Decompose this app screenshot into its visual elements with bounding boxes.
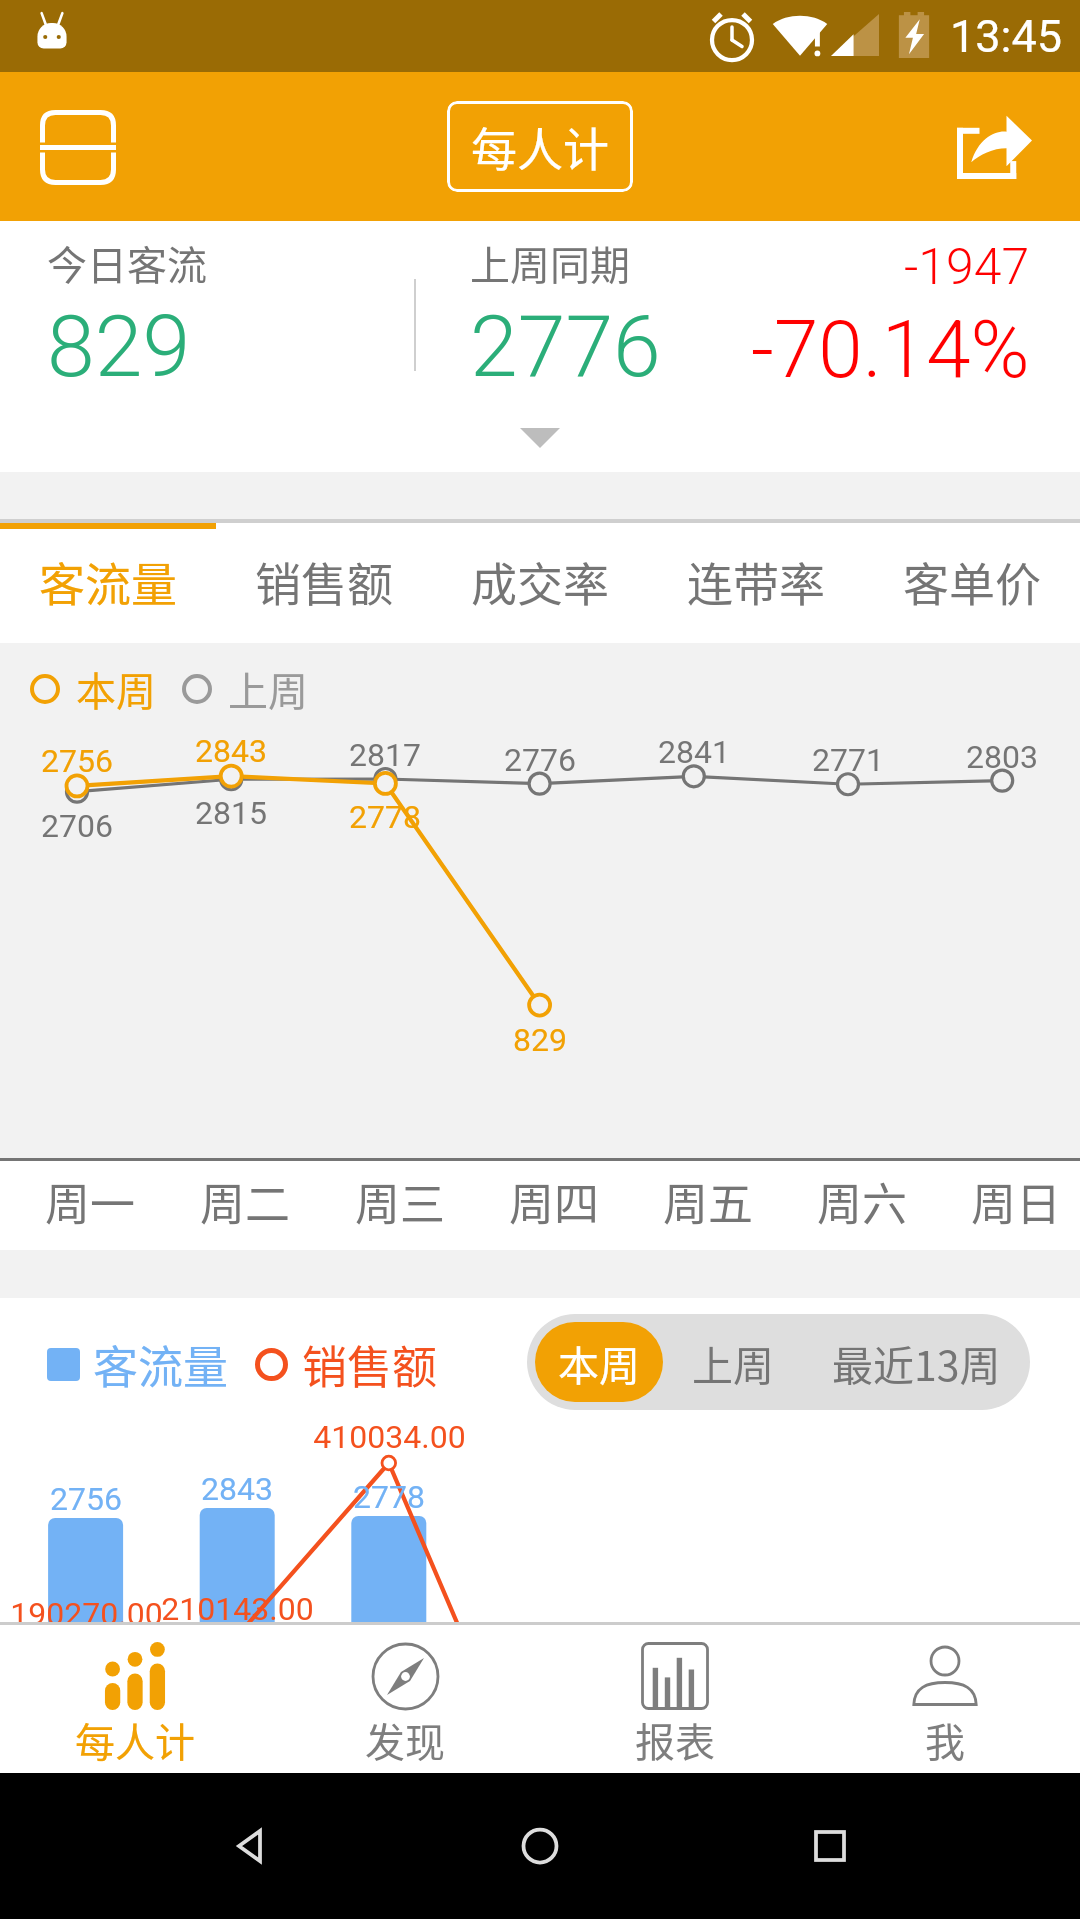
staticText: 2706 <box>41 807 113 845</box>
staticText: 2778 <box>353 1478 425 1516</box>
staticText: 发现 <box>365 1711 445 1769</box>
staticText: 829 <box>513 1021 567 1059</box>
button[interactable]: Home <box>500 1806 580 1886</box>
staticText: 每人计 <box>75 1711 195 1769</box>
staticText: 2817 <box>349 736 421 774</box>
staticText: 上周 <box>692 1333 774 1392</box>
staticText: 最近13周 <box>832 1333 1001 1392</box>
staticText: 客流量 <box>93 1332 229 1397</box>
button[interactable]: 销售额 <box>216 529 432 643</box>
staticText: 周三 <box>355 1169 446 1234</box>
staticText: 报表 <box>635 1711 715 1769</box>
button[interactable]: 每人计 <box>447 101 633 192</box>
staticText: 2756 <box>50 1480 122 1518</box>
staticText: 每人计 <box>471 113 609 180</box>
staticText: 周六 <box>817 1169 908 1234</box>
button[interactable]: Recent apps <box>790 1806 870 1886</box>
staticText: 2771 <box>812 741 884 779</box>
button[interactable]: 客单价 <box>864 529 1080 643</box>
staticText: 今日客流 <box>47 234 207 292</box>
button[interactable]: 本周 <box>535 1322 663 1402</box>
staticText: 周二 <box>200 1169 291 1234</box>
staticText: 2803 <box>966 738 1038 776</box>
button[interactable]: 上周 <box>663 1314 802 1410</box>
staticText: 410034.00 <box>313 1418 466 1456</box>
button[interactable]: 我 <box>810 1625 1080 1773</box>
staticText: 客单价 <box>903 548 1041 615</box>
staticText: 客流量 <box>39 548 177 615</box>
staticText: 上周同期 <box>470 234 630 292</box>
button[interactable]: 成交率 <box>432 529 648 643</box>
button[interactable]: Back <box>210 1806 290 1886</box>
button[interactable]: 最近13周 <box>802 1314 1030 1410</box>
button[interactable]: 客流量 <box>0 529 216 643</box>
staticText: 829 <box>47 296 191 397</box>
staticText: 2841 <box>658 733 730 771</box>
staticText: 销售额 <box>302 1332 438 1397</box>
staticText: 13:45 <box>950 10 1063 63</box>
staticText: 周一 <box>45 1169 136 1234</box>
staticText: 2778 <box>349 798 421 836</box>
staticText: 周四 <box>509 1169 600 1234</box>
staticText: -1947 <box>904 238 1030 297</box>
staticText: -70.14% <box>751 303 1030 397</box>
staticText: 本周 <box>558 1333 640 1392</box>
staticText: 周五 <box>663 1169 754 1234</box>
staticText: 210143.00 <box>161 1590 314 1628</box>
staticText: 成交率 <box>471 548 609 615</box>
staticText: 2843 <box>195 732 267 770</box>
staticText: 周日 <box>971 1169 1062 1234</box>
button[interactable]: 报表 <box>540 1625 810 1773</box>
staticText: 连带率 <box>687 548 825 615</box>
staticText: 2815 <box>195 794 267 832</box>
button[interactable]: 发现 <box>270 1625 540 1773</box>
button[interactable]: Select store <box>28 97 128 197</box>
staticText: 销售额 <box>255 548 393 615</box>
staticText: 2843 <box>201 1470 273 1508</box>
button[interactable]: 每人计 <box>0 1625 270 1773</box>
staticText: 2776 <box>504 741 576 779</box>
button[interactable]: 连带率 <box>648 529 864 643</box>
staticText: 2756 <box>41 742 113 780</box>
staticText: 本周 <box>76 660 156 718</box>
staticText: 2776 <box>470 296 661 397</box>
staticText: 我 <box>925 1711 965 1769</box>
staticText: 190270.00 <box>10 1595 163 1633</box>
staticText: 上周 <box>228 660 308 718</box>
button[interactable]: Share <box>944 97 1044 197</box>
